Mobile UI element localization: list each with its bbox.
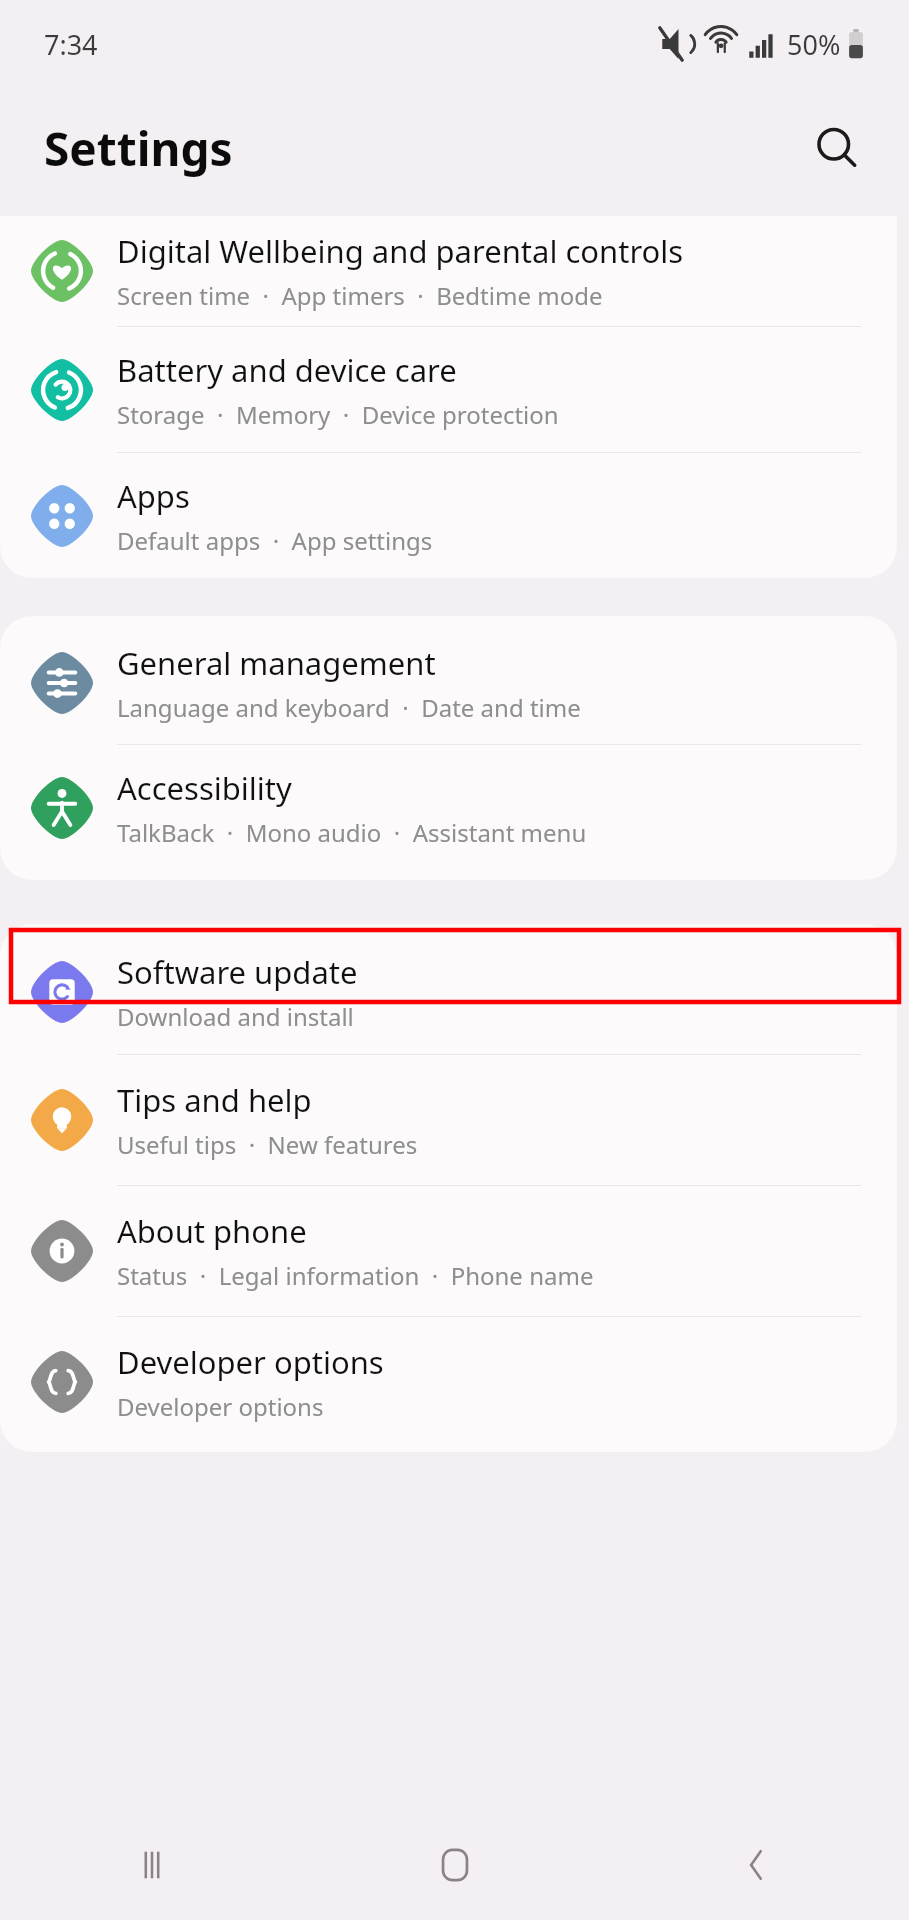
button[interactable]: Developer options — [0, 1317, 897, 1447]
staticText: 50% — [787, 26, 841, 63]
button[interactable]: Accessibility — [0, 745, 897, 871]
staticText: Screen time · App timers · Bedtime mode — [117, 279, 603, 312]
staticText: Useful tips · New features — [117, 1128, 418, 1161]
button[interactable]: Battery and device care — [0, 327, 897, 452]
staticText: About phone — [117, 1210, 307, 1252]
staticText: Battery and device care — [117, 349, 457, 391]
staticText: Developer options — [117, 1390, 324, 1423]
button[interactable]: Search — [793, 104, 881, 192]
button[interactable]: Back — [606, 1810, 909, 1920]
button[interactable]: Software update — [0, 930, 897, 1054]
staticText: 7:34 — [44, 26, 98, 63]
staticText: Developer options — [117, 1341, 384, 1383]
button[interactable]: Home — [303, 1810, 606, 1920]
staticText: Tips and help — [117, 1079, 312, 1121]
staticText: Digital Wellbeing and parental controls — [117, 230, 684, 272]
button[interactable]: About phone — [0, 1186, 897, 1316]
staticText: Settings — [44, 117, 233, 180]
button[interactable]: Apps — [0, 453, 897, 578]
staticText: Storage · Memory · Device protection — [117, 398, 559, 431]
staticText: Software update — [117, 951, 358, 993]
button[interactable]: General management — [0, 622, 897, 744]
staticText: Apps — [117, 475, 190, 517]
staticText: Default apps · App settings — [117, 524, 433, 557]
staticText: Language and keyboard · Date and time — [117, 691, 581, 724]
button[interactable]: Tips and help — [0, 1055, 897, 1185]
staticText: TalkBack · Mono audio · Assistant menu — [117, 816, 587, 849]
staticText: Accessibility — [117, 767, 292, 809]
staticText: General management — [117, 642, 436, 684]
staticText: Download and install — [117, 1000, 354, 1033]
button[interactable]: Digital Wellbeing and parental controls — [0, 216, 897, 326]
button[interactable]: Recent apps — [0, 1810, 303, 1920]
staticText: Status · Legal information · Phone name — [117, 1259, 594, 1292]
